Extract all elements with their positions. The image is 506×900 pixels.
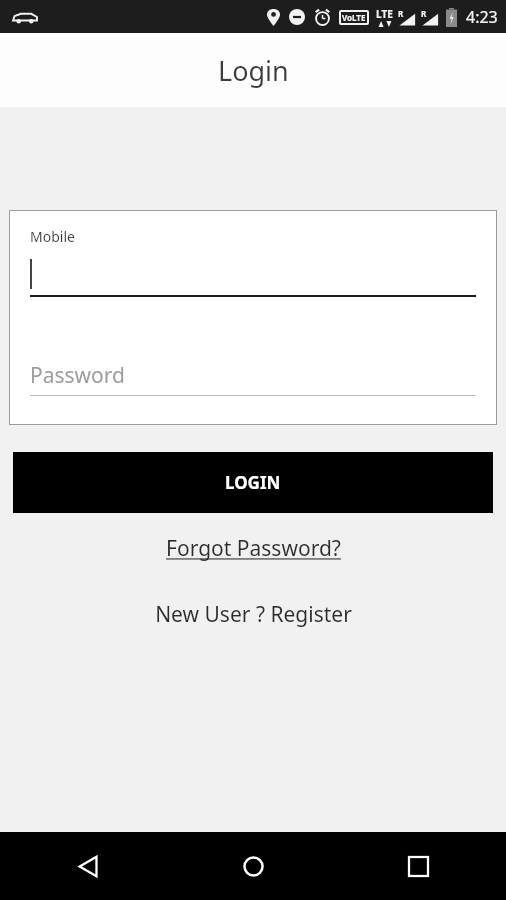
button[interactable]: Password [30, 359, 476, 391]
staticText: 4:23 [466, 6, 498, 28]
staticText: R [398, 8, 404, 19]
staticText: LTE [376, 7, 393, 21]
staticText: Password [30, 361, 125, 390]
button[interactable] [30, 257, 476, 295]
button[interactable]: New User ? Register [145, 596, 362, 633]
button[interactable]: Recent apps [390, 838, 446, 894]
staticText: LOGIN [225, 471, 281, 494]
staticText: VoLTE [342, 12, 366, 23]
button[interactable]: Forgot Password? [156, 530, 351, 567]
button[interactable]: Back [60, 838, 116, 894]
staticText: Mobile [30, 227, 75, 246]
staticText: Login [218, 52, 289, 89]
staticText: Forgot Password? [166, 534, 341, 563]
button[interactable]: Home [225, 838, 281, 894]
button[interactable]: LOGIN [13, 452, 493, 513]
staticText: New User ? Register [155, 600, 352, 629]
staticText: R [421, 8, 427, 19]
